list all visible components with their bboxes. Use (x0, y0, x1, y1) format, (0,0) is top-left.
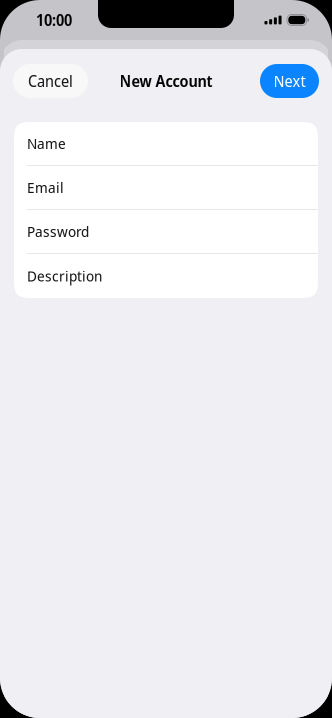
button[interactable]: Password (14, 210, 318, 254)
staticText: Cancel (28, 70, 73, 91)
button[interactable]: Email (14, 166, 318, 210)
staticText: Next (273, 70, 305, 91)
staticText: 10:00 (36, 9, 72, 30)
button[interactable]: Name (14, 122, 318, 166)
staticText: Email (27, 178, 64, 197)
staticText: Password (27, 222, 89, 241)
button[interactable]: Next (260, 64, 319, 98)
button[interactable]: Description (14, 254, 318, 298)
staticText: Name (27, 134, 66, 153)
staticText: Description (27, 266, 102, 286)
button[interactable]: Cancel (13, 64, 88, 98)
staticText: New Account (119, 70, 212, 91)
